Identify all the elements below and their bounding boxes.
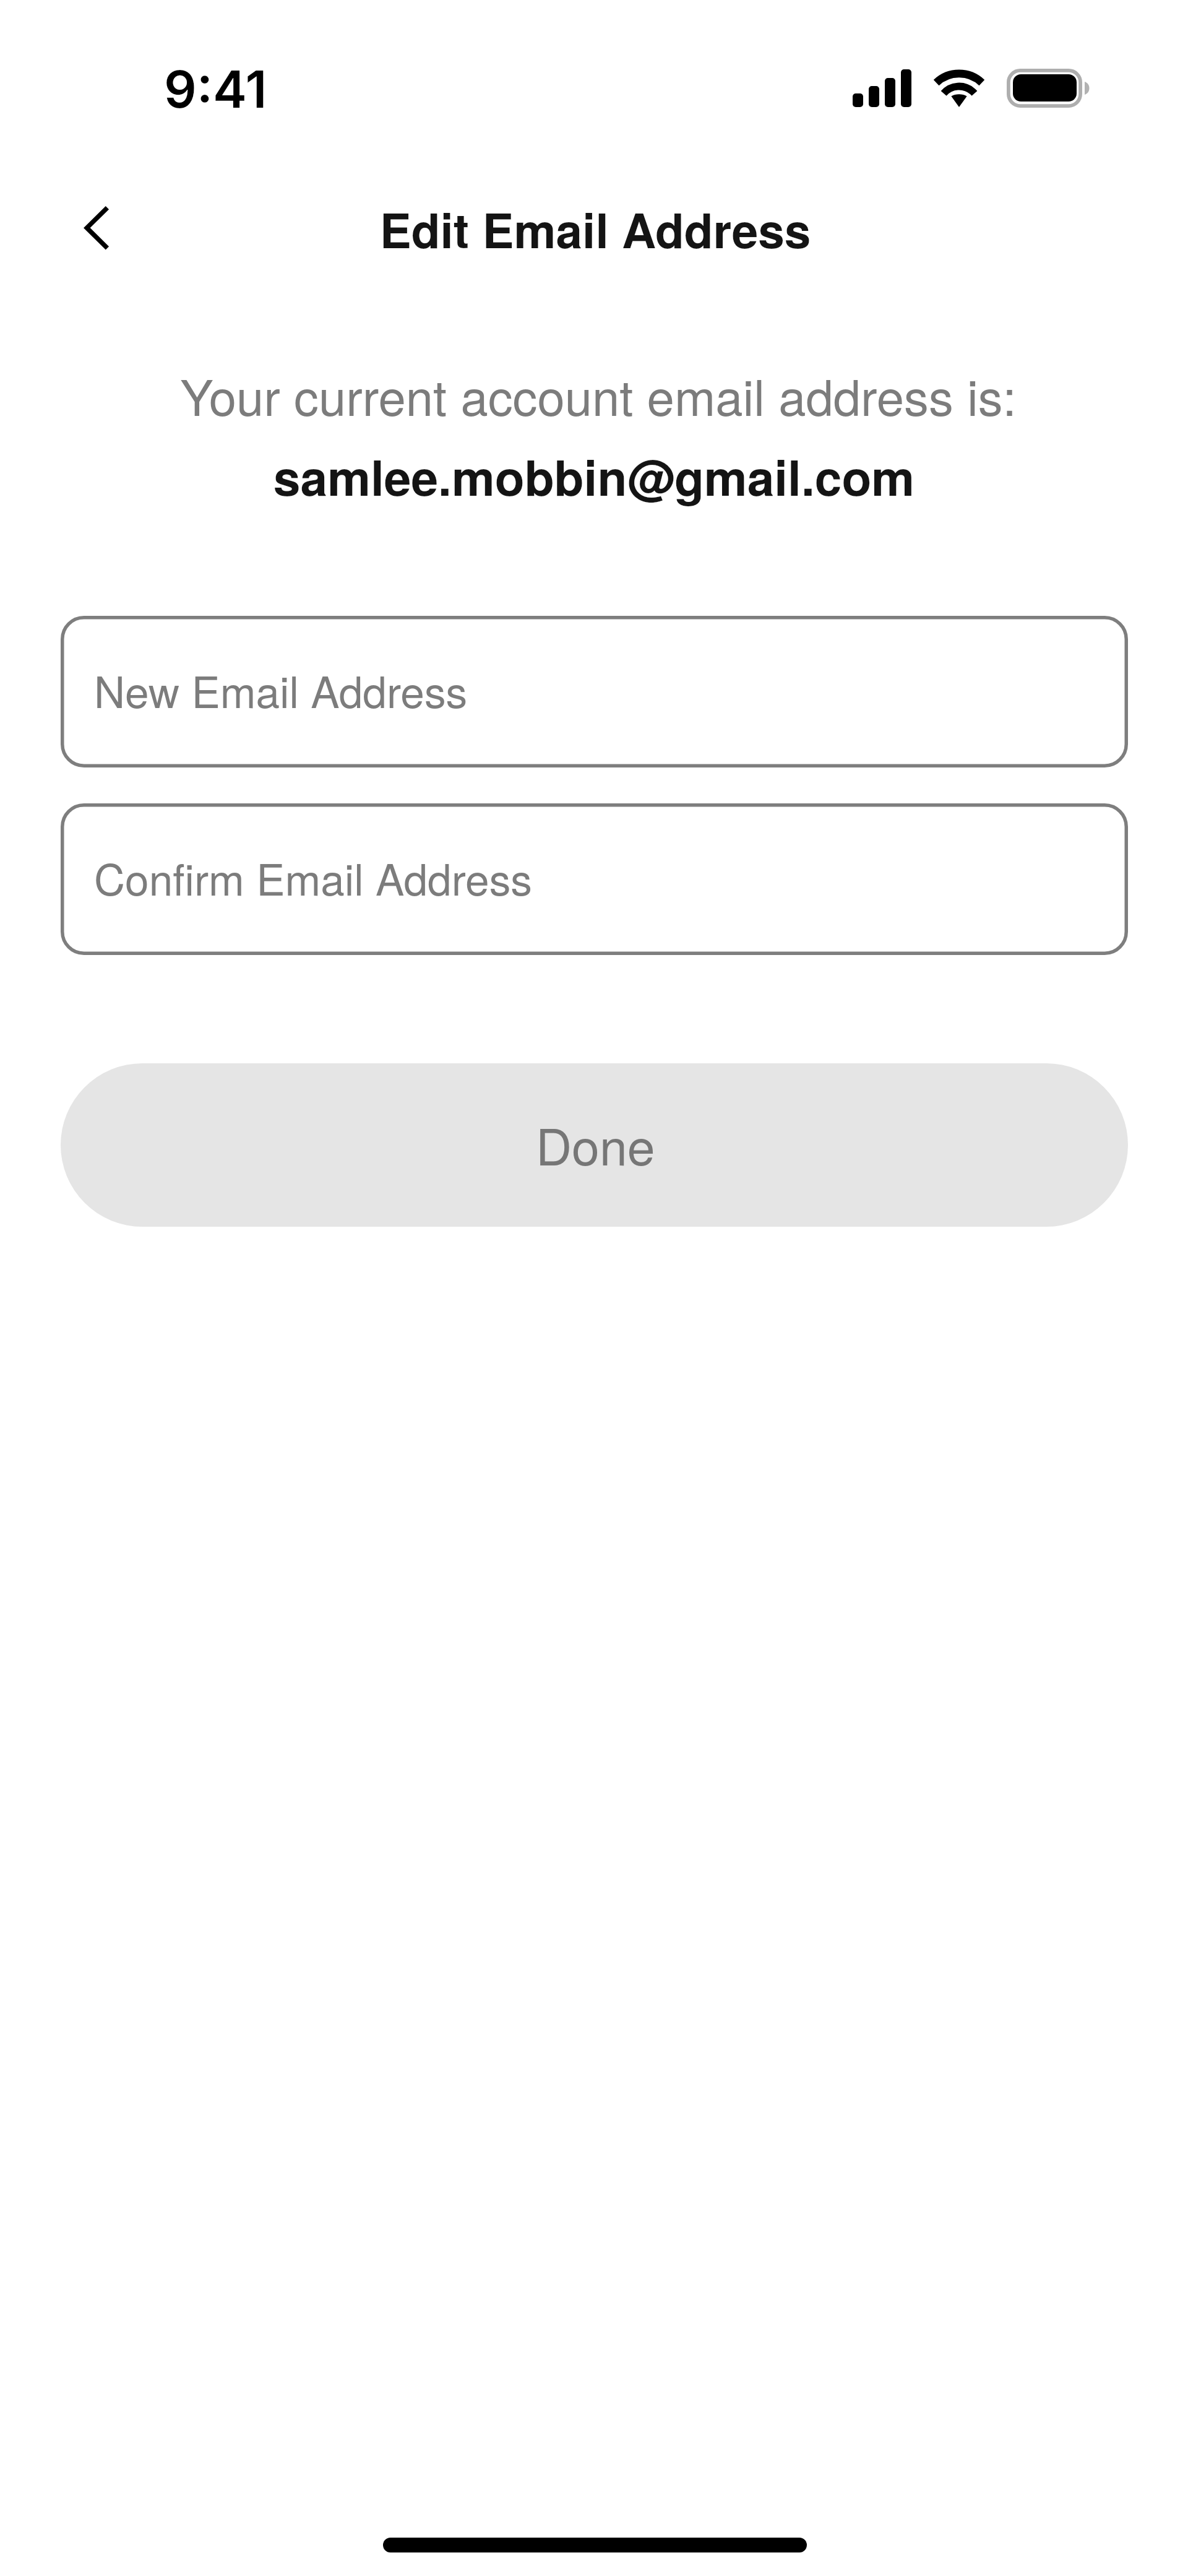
button[interactable]: Confirm Email Address bbox=[61, 803, 1128, 955]
staticText: Done bbox=[536, 1109, 655, 1180]
staticText: Edit Email Address bbox=[1, 195, 1188, 263]
button[interactable]: New Email Address bbox=[61, 616, 1128, 767]
staticText: Your current account email address is: bbox=[4, 360, 1188, 430]
staticText: New Email Address bbox=[94, 659, 468, 720]
button[interactable]: Back bbox=[61, 194, 134, 262]
staticText: samlee.mobbin@gmail.com bbox=[0, 441, 1188, 511]
staticText: Confirm Email Address bbox=[94, 846, 533, 907]
button[interactable]: Done bbox=[61, 1063, 1128, 1227]
staticText: 9:41 bbox=[164, 58, 267, 120]
